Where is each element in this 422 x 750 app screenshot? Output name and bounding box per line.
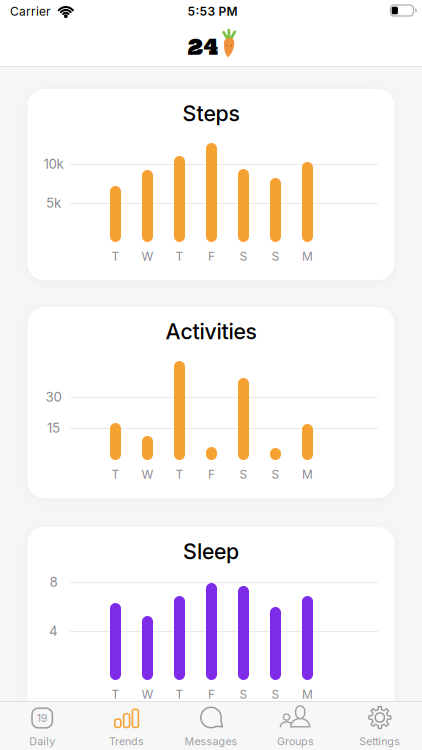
- staticText: S: [271, 687, 279, 702]
- staticText: T: [175, 687, 183, 702]
- staticText: S: [239, 687, 247, 702]
- button[interactable]: Settings: [338, 702, 422, 750]
- staticText: M: [302, 249, 313, 264]
- staticText: 19: [37, 712, 48, 724]
- staticText: T: [175, 467, 183, 482]
- staticText: T: [175, 249, 183, 264]
- staticText: T: [111, 687, 119, 702]
- staticText: T: [111, 467, 119, 482]
- staticText: 30: [45, 389, 61, 405]
- button[interactable]: Groups: [253, 702, 337, 750]
- staticText: F: [208, 249, 215, 264]
- staticText: W: [141, 687, 153, 702]
- staticText: F: [208, 467, 215, 482]
- button[interactable]: 19: [0, 702, 84, 750]
- staticText: 5:53 PM: [187, 4, 237, 18]
- staticText: 8: [49, 574, 57, 590]
- staticText: 5k: [46, 195, 61, 211]
- staticText: Carrier: [10, 4, 51, 18]
- staticText: T: [111, 249, 119, 264]
- staticText: S: [239, 467, 247, 482]
- staticText: Daily: [29, 735, 55, 748]
- staticText: Groups: [277, 735, 314, 748]
- staticText: S: [271, 467, 279, 482]
- staticText: M: [302, 687, 313, 702]
- staticText: W: [141, 249, 153, 264]
- staticText: 4: [49, 623, 58, 639]
- button[interactable]: Trends: [85, 702, 169, 750]
- staticText: 10k: [43, 156, 63, 172]
- staticText: Messages: [184, 735, 237, 748]
- staticText: 15: [47, 420, 60, 436]
- staticText: Settings: [359, 735, 400, 748]
- staticText: Trends: [109, 735, 144, 748]
- staticText: W: [141, 467, 153, 482]
- staticText: S: [271, 249, 279, 264]
- staticText: Activities: [165, 319, 256, 344]
- button[interactable]: Messages: [169, 702, 253, 750]
- staticText: S: [239, 249, 247, 264]
- staticText: F: [208, 687, 215, 702]
- staticText: Steps: [182, 101, 239, 126]
- staticText: Sleep: [183, 539, 239, 564]
- staticText: M: [302, 467, 313, 482]
- staticText: 24: [187, 34, 218, 60]
